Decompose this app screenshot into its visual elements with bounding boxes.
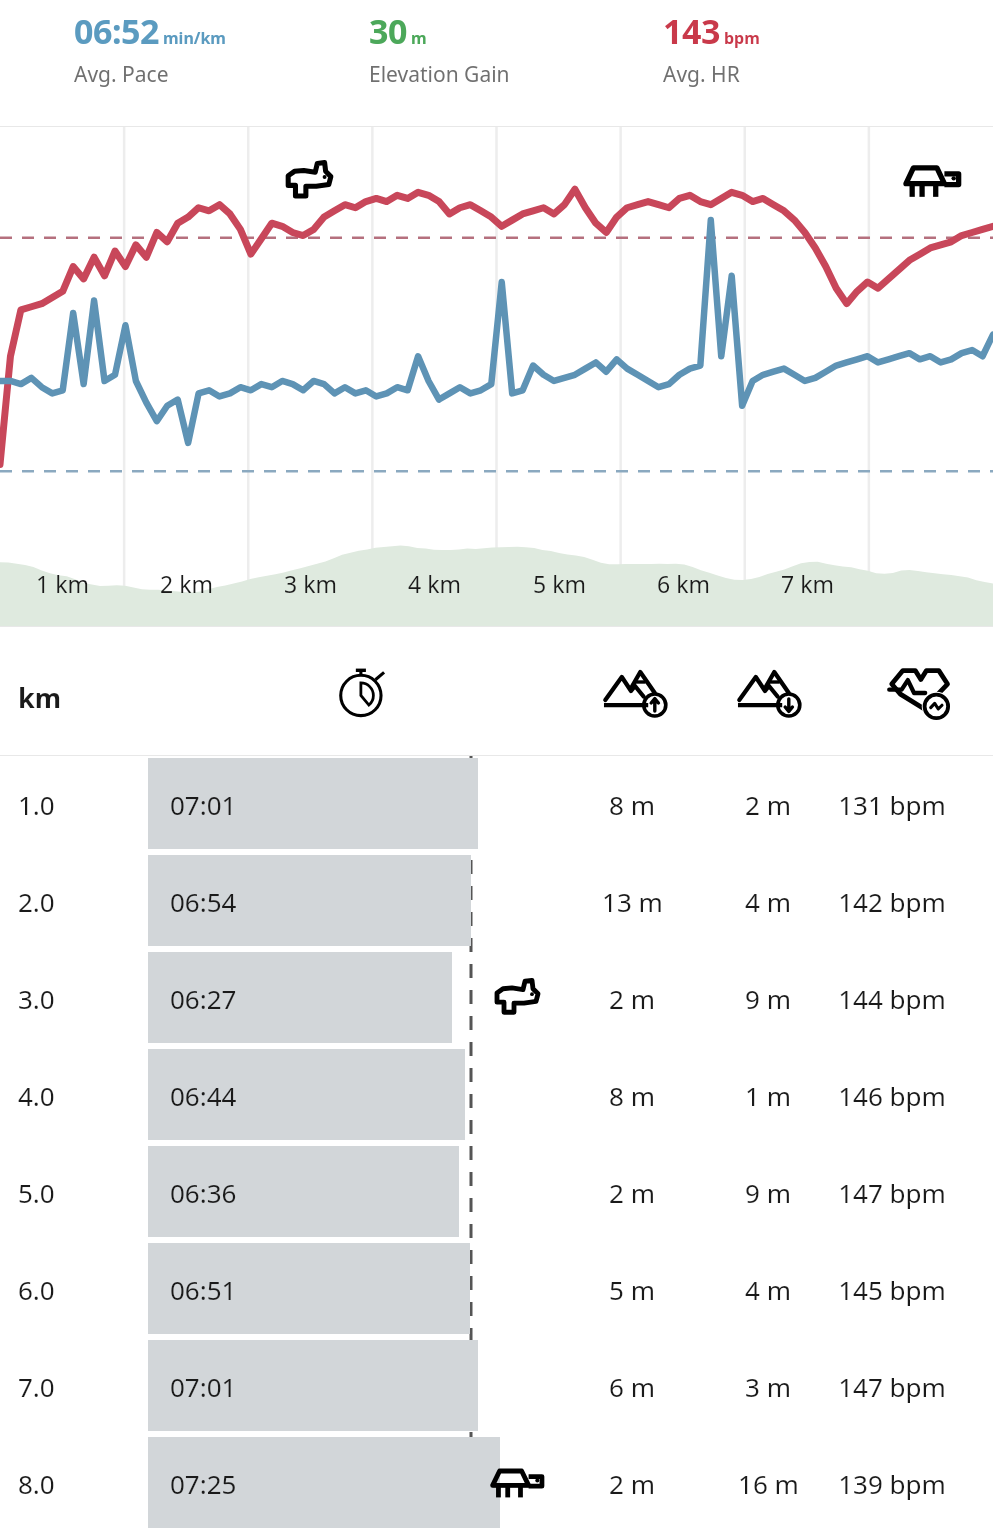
staticText: 9 m	[745, 1175, 791, 1210]
staticText: 06:51	[170, 1272, 237, 1307]
staticText: 1 m	[745, 1078, 791, 1113]
staticText: 2 km	[160, 568, 213, 599]
staticText: 13 m	[602, 884, 663, 919]
staticText: 9 m	[745, 981, 791, 1016]
staticText: 6.0	[18, 1272, 55, 1307]
other: Slowest split	[901, 159, 963, 203]
staticText: 16 m	[738, 1466, 799, 1501]
staticText: 06:36	[170, 1175, 237, 1210]
staticText: 2.0	[18, 884, 55, 919]
staticText: 145 bpm	[838, 1272, 946, 1307]
staticText: 3.0	[18, 981, 55, 1016]
button[interactable]: Duration	[334, 663, 390, 719]
staticText: 06:52	[74, 8, 159, 54]
staticText: 06:54	[170, 884, 237, 919]
staticText: 3 km	[284, 568, 337, 599]
staticText: 139 bpm	[838, 1466, 946, 1501]
staticText: 144 bpm	[838, 981, 946, 1016]
button[interactable]: Average heart rate	[888, 665, 950, 721]
staticText: 2 m	[609, 1466, 655, 1501]
staticText: 131 bpm	[838, 787, 946, 822]
staticText: 6 m	[609, 1369, 655, 1404]
staticText: 5 km	[533, 568, 586, 599]
staticText: 2 m	[609, 1175, 655, 1210]
staticText: 147 bpm	[838, 1175, 946, 1210]
staticText: Elevation Gain	[369, 60, 510, 89]
staticText: 2 m	[745, 787, 791, 822]
staticText: 142 bpm	[838, 884, 946, 919]
button[interactable]	[0, 1241, 993, 1338]
staticText: 5 m	[609, 1272, 655, 1307]
staticText: 07:01	[170, 1369, 237, 1404]
other: Slowest split	[488, 1463, 546, 1503]
button[interactable]: 30	[369, 8, 514, 89]
staticText: m	[411, 27, 427, 49]
staticText: 5.0	[18, 1175, 55, 1210]
staticText: 4 km	[408, 568, 461, 599]
button[interactable]: 1 km	[0, 127, 993, 626]
staticText: 06:27	[170, 981, 237, 1016]
staticText: 143	[663, 8, 720, 54]
button[interactable]	[0, 756, 993, 853]
staticText: 4 m	[745, 884, 791, 919]
staticText: 146 bpm	[838, 1078, 946, 1113]
staticText: km	[18, 679, 62, 716]
staticText: 7.0	[18, 1369, 55, 1404]
button[interactable]	[0, 1144, 993, 1241]
staticText: 07:25	[170, 1466, 237, 1501]
staticText: bpm	[724, 27, 760, 49]
staticText: 147 bpm	[838, 1369, 946, 1404]
button[interactable]: 06:52	[74, 8, 230, 89]
button[interactable]	[0, 853, 993, 950]
staticText: 2 m	[609, 981, 655, 1016]
staticText: 4.0	[18, 1078, 55, 1113]
staticText: 4 m	[745, 1272, 791, 1307]
staticText: 30	[369, 8, 407, 54]
button[interactable]	[0, 1047, 993, 1144]
staticText: Avg. HR	[663, 60, 740, 89]
button[interactable]: Elevation loss	[736, 669, 802, 719]
staticText: 3 m	[745, 1369, 791, 1404]
staticText: 6 km	[657, 568, 710, 599]
other: Fastest split	[492, 977, 542, 1019]
staticText: 06:44	[170, 1078, 237, 1113]
staticText: 1 km	[36, 568, 89, 599]
staticText: 07:01	[170, 787, 237, 822]
button[interactable]: Elevation gain	[602, 669, 668, 719]
button[interactable]: 143	[663, 8, 764, 89]
staticText: min/km	[163, 27, 226, 49]
other: Fastest split	[283, 159, 335, 203]
staticText: 7 km	[781, 568, 834, 599]
staticText: 8.0	[18, 1466, 55, 1501]
button[interactable]	[0, 950, 993, 1047]
staticText: 8 m	[609, 1078, 655, 1113]
staticText: 8 m	[609, 787, 655, 822]
staticText: 1.0	[18, 787, 55, 822]
button[interactable]	[0, 1338, 993, 1435]
staticText: Avg. Pace	[74, 60, 169, 89]
button[interactable]	[0, 1435, 993, 1532]
